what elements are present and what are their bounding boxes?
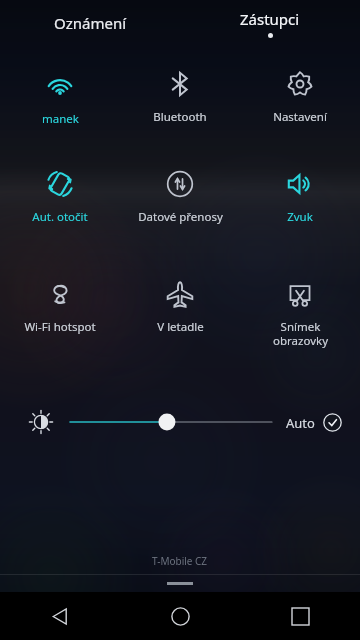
staticText: Datové přenosy [138,209,223,225]
button[interactable]: Home [120,592,240,640]
staticText: manek [42,111,79,127]
button[interactable]: Airplane mode [120,266,240,376]
staticText: Auto [286,414,315,432]
staticText: Wi-Fi hotspot [24,319,96,335]
button[interactable]: Collapse panel [0,575,360,592]
other: Settings [286,70,314,98]
button[interactable]: Recents [240,592,360,640]
button[interactable]: Wi-Fi [0,56,120,156]
staticText: Zástupci [240,9,300,29]
staticText: V letadle [157,319,204,335]
button[interactable]: Oznámení [0,0,180,46]
other: Brightness [30,411,52,433]
button[interactable]: Back [0,592,120,640]
other: Airplane mode [166,280,194,308]
other: Screenshot [286,280,314,308]
button[interactable]: Auto [286,413,342,432]
button[interactable]: Settings [240,56,360,156]
staticText: Zvuk [287,209,313,225]
button[interactable]: Wi-Fi hotspot [0,266,120,376]
staticText: Aut. otočit [32,209,88,225]
other: Mobile data [166,170,194,198]
button[interactable]: Screenshot [240,266,360,376]
button[interactable]: Mobile data [120,156,240,266]
other: Bluetooth [166,70,194,98]
button[interactable]: Auto rotate [0,156,120,266]
button[interactable]: Zástupci [180,0,360,46]
button[interactable]: Bluetooth [120,56,240,156]
other: Wi-Fi [45,70,75,100]
button[interactable]: Brightness slider [70,405,272,439]
staticText: Snímek obrazovky [273,319,328,348]
staticText: T-Mobile CZ [152,554,208,568]
staticText: Nastavení [273,109,327,125]
other: Auto rotate [46,170,74,198]
other: Wi-Fi hotspot [46,280,74,308]
button[interactable]: Sound [240,156,360,266]
staticText: Bluetooth [153,109,207,125]
other: Sound [286,170,314,198]
staticText: Oznámení [54,13,127,33]
